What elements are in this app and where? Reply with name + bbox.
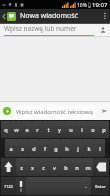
button[interactable] <box>26 177 81 195</box>
staticText: u <box>69 126 73 133</box>
staticText: Nowa wiadomość <box>20 11 78 21</box>
button[interactable]: h <box>61 139 72 157</box>
staticText: o <box>91 126 95 133</box>
staticText: 10% <box>77 2 87 9</box>
button[interactable]: l <box>94 139 105 157</box>
button[interactable]: b <box>60 158 71 176</box>
button[interactable]: q <box>1 121 11 138</box>
button[interactable]: w <box>11 121 21 138</box>
button[interactable]: Wpisz nazwę lub numer <box>0 24 110 36</box>
button[interactable]: a <box>5 139 17 157</box>
staticText: 19:07 <box>92 1 108 9</box>
staticText: i <box>81 126 83 133</box>
button[interactable]: v <box>49 158 60 176</box>
button[interactable]: r <box>32 121 43 138</box>
staticText: l <box>99 145 101 152</box>
button[interactable]: k <box>83 139 94 157</box>
staticText: w <box>14 126 19 133</box>
staticText: g <box>54 145 58 152</box>
button[interactable]: o <box>87 121 98 138</box>
staticText: t <box>47 126 50 133</box>
button[interactable]: Add recipient from contacts <box>98 25 108 35</box>
staticText: p <box>102 126 106 133</box>
button[interactable]: Backspace <box>93 158 109 176</box>
staticText: Wpisz nazwę lub numer <box>4 24 77 33</box>
staticText: . <box>85 183 87 190</box>
staticText: d <box>32 145 36 152</box>
button[interactable]: p <box>98 121 109 138</box>
staticText: ?123 <box>4 184 13 189</box>
staticText: x <box>31 164 34 171</box>
staticText: k <box>87 145 91 152</box>
staticText: r <box>36 126 39 133</box>
button[interactable]: x <box>27 158 38 176</box>
button[interactable]: More options <box>100 9 110 23</box>
button[interactable]: ?123 <box>1 177 16 195</box>
button[interactable]: Send <box>98 105 110 117</box>
button[interactable]: g <box>50 139 61 157</box>
button[interactable]: c <box>38 158 49 176</box>
staticText: Enter <box>95 184 106 189</box>
button[interactable]: u <box>65 121 76 138</box>
button[interactable]: f <box>39 139 50 157</box>
staticText: h <box>65 145 69 152</box>
button[interactable]: j <box>72 139 83 157</box>
staticText: s <box>21 145 24 152</box>
staticText: Wpisz wiadomość tekstową <box>16 108 93 116</box>
button[interactable]: Wpisz wiadomość tekstową <box>14 105 96 118</box>
button[interactable]: s <box>17 139 28 157</box>
staticText: f <box>44 145 46 152</box>
staticText: j <box>77 145 79 152</box>
staticText: m <box>85 164 91 171</box>
button[interactable]: Enter <box>91 177 109 195</box>
button[interactable]: Back <box>0 9 18 23</box>
button[interactable]: Add attachment <box>3 107 11 115</box>
staticText: q <box>4 126 8 133</box>
staticText: b <box>64 164 68 171</box>
button[interactable]: d <box>28 139 39 157</box>
button[interactable]: Voice input <box>16 177 26 195</box>
button[interactable]: . <box>81 177 91 195</box>
staticText: n <box>75 164 79 171</box>
button[interactable]: t <box>43 121 54 138</box>
button[interactable]: e <box>21 121 32 138</box>
button[interactable]: Shift <box>1 158 16 176</box>
button[interactable]: m <box>82 158 93 176</box>
button[interactable]: z <box>16 158 27 176</box>
staticText: a <box>9 145 13 152</box>
button[interactable]: i <box>76 121 87 138</box>
staticText: y <box>58 126 61 133</box>
staticText: v <box>53 164 56 171</box>
button[interactable]: y <box>54 121 65 138</box>
staticText: c <box>42 164 45 171</box>
staticText: z <box>20 164 23 171</box>
staticText: e <box>25 126 29 133</box>
button[interactable]: n <box>71 158 82 176</box>
